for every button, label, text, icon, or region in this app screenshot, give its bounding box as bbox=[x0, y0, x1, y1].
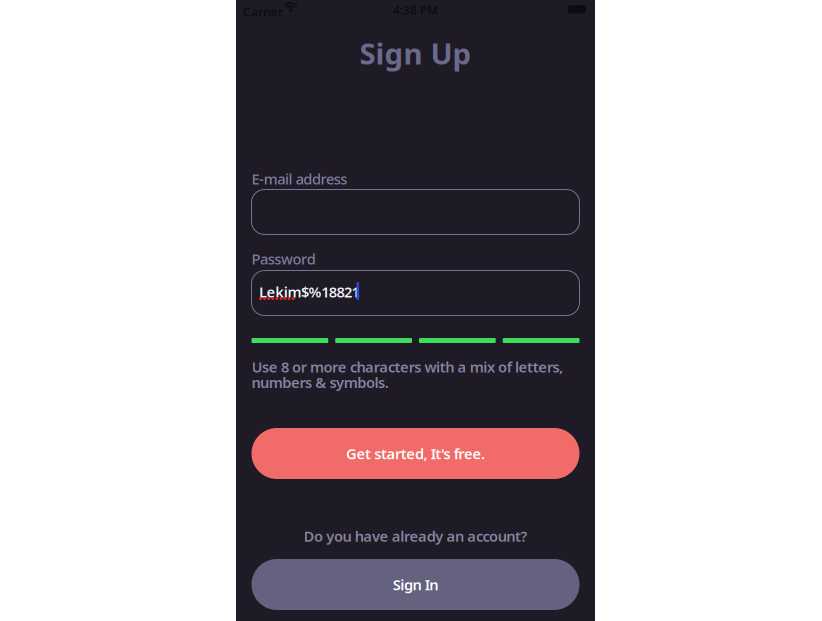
button[interactable]: Get started, It's free. bbox=[251, 428, 579, 479]
staticText: Do you have already an account? bbox=[303, 526, 527, 546]
button[interactable]: Sign In bbox=[251, 559, 579, 610]
button[interactable]: Password bbox=[251, 270, 579, 315]
staticText: Get started, It's free. bbox=[346, 444, 485, 463]
staticText: Lekim$%18821 bbox=[259, 282, 360, 301]
staticText: Carrier bbox=[243, 4, 283, 20]
staticText: Sign Up bbox=[359, 33, 471, 72]
staticText: 4:38 PM bbox=[393, 2, 438, 18]
button[interactable]: E-mail address bbox=[251, 189, 579, 234]
staticText: Password bbox=[251, 249, 316, 268]
staticText: Sign In bbox=[393, 575, 438, 594]
staticText: E-mail address bbox=[251, 169, 347, 188]
staticText: Use 8 or more characters with a mix of l… bbox=[251, 357, 563, 392]
